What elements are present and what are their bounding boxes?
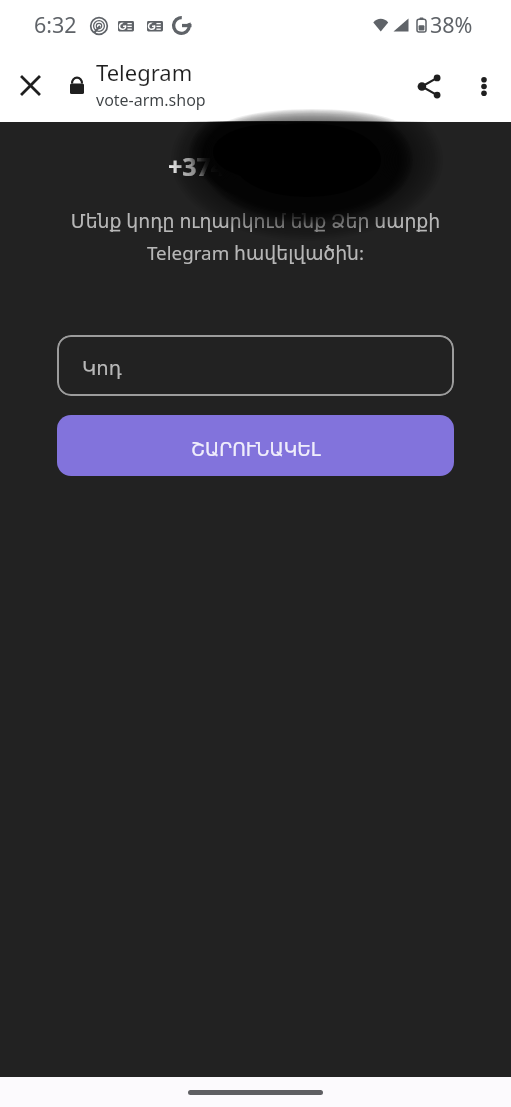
- button[interactable]: Կոդ: [57, 335, 454, 396]
- button[interactable]: Share: [403, 60, 455, 112]
- button[interactable]: More options: [457, 60, 509, 112]
- staticText: ՇԱՐՈՒՆԱԿԵԼ: [191, 439, 321, 461]
- staticText: 6:32: [34, 10, 77, 39]
- staticText: +374 93 123 456: [8, 149, 511, 183]
- staticText: vote-arm.shop: [96, 89, 206, 111]
- staticText: Մենք կոդը ուղարկում ենք Ձեր սարքի Telegr…: [24, 208, 487, 265]
- button[interactable]: Close: [4, 59, 56, 111]
- button[interactable]: ՇԱՐՈՒՆԱԿԵԼ: [57, 415, 454, 476]
- staticText: Կոդ: [82, 357, 122, 380]
- staticText: Telegram: [96, 57, 193, 87]
- staticText: 38%: [430, 10, 473, 39]
